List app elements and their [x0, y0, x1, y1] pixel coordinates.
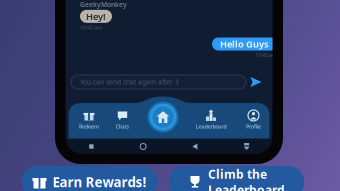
- staticText: Leaderboard: [195, 123, 226, 130]
- staticText: Profile: [246, 123, 261, 130]
- staticText: 10:45 am: [255, 51, 277, 59]
- staticText: Earn Rewards!: [52, 173, 146, 191]
- button[interactable]: Leaderboard: [188, 109, 234, 131]
- button[interactable]: Home: [117, 138, 169, 154]
- button[interactable]: Earn Rewards!: [22, 166, 157, 191]
- staticText: GeekyMonkey: [80, 0, 127, 9]
- button[interactable]: Chats: [102, 109, 142, 131]
- staticText: Redeem: [79, 123, 99, 130]
- staticText: Chats: [115, 123, 129, 130]
- button[interactable]: Profile: [233, 109, 273, 131]
- button[interactable]: Back: [169, 138, 221, 154]
- staticText: Climb the Leaderboard: [208, 166, 285, 191]
- button[interactable]: Redeem: [69, 109, 109, 131]
- button[interactable]: Send: [250, 76, 262, 87]
- button[interactable]: Home: [147, 101, 178, 132]
- staticText: Hello Guys: [220, 38, 269, 50]
- button[interactable]: Hide keyboard: [221, 138, 273, 154]
- button[interactable]: Climb the Leaderboard: [169, 166, 304, 191]
- staticText: You can send chat again after 3: [80, 78, 181, 86]
- button[interactable]: Recents: [65, 138, 117, 154]
- staticText: Hey!: [86, 10, 106, 23]
- staticText: 10:42 am: [80, 24, 102, 31]
